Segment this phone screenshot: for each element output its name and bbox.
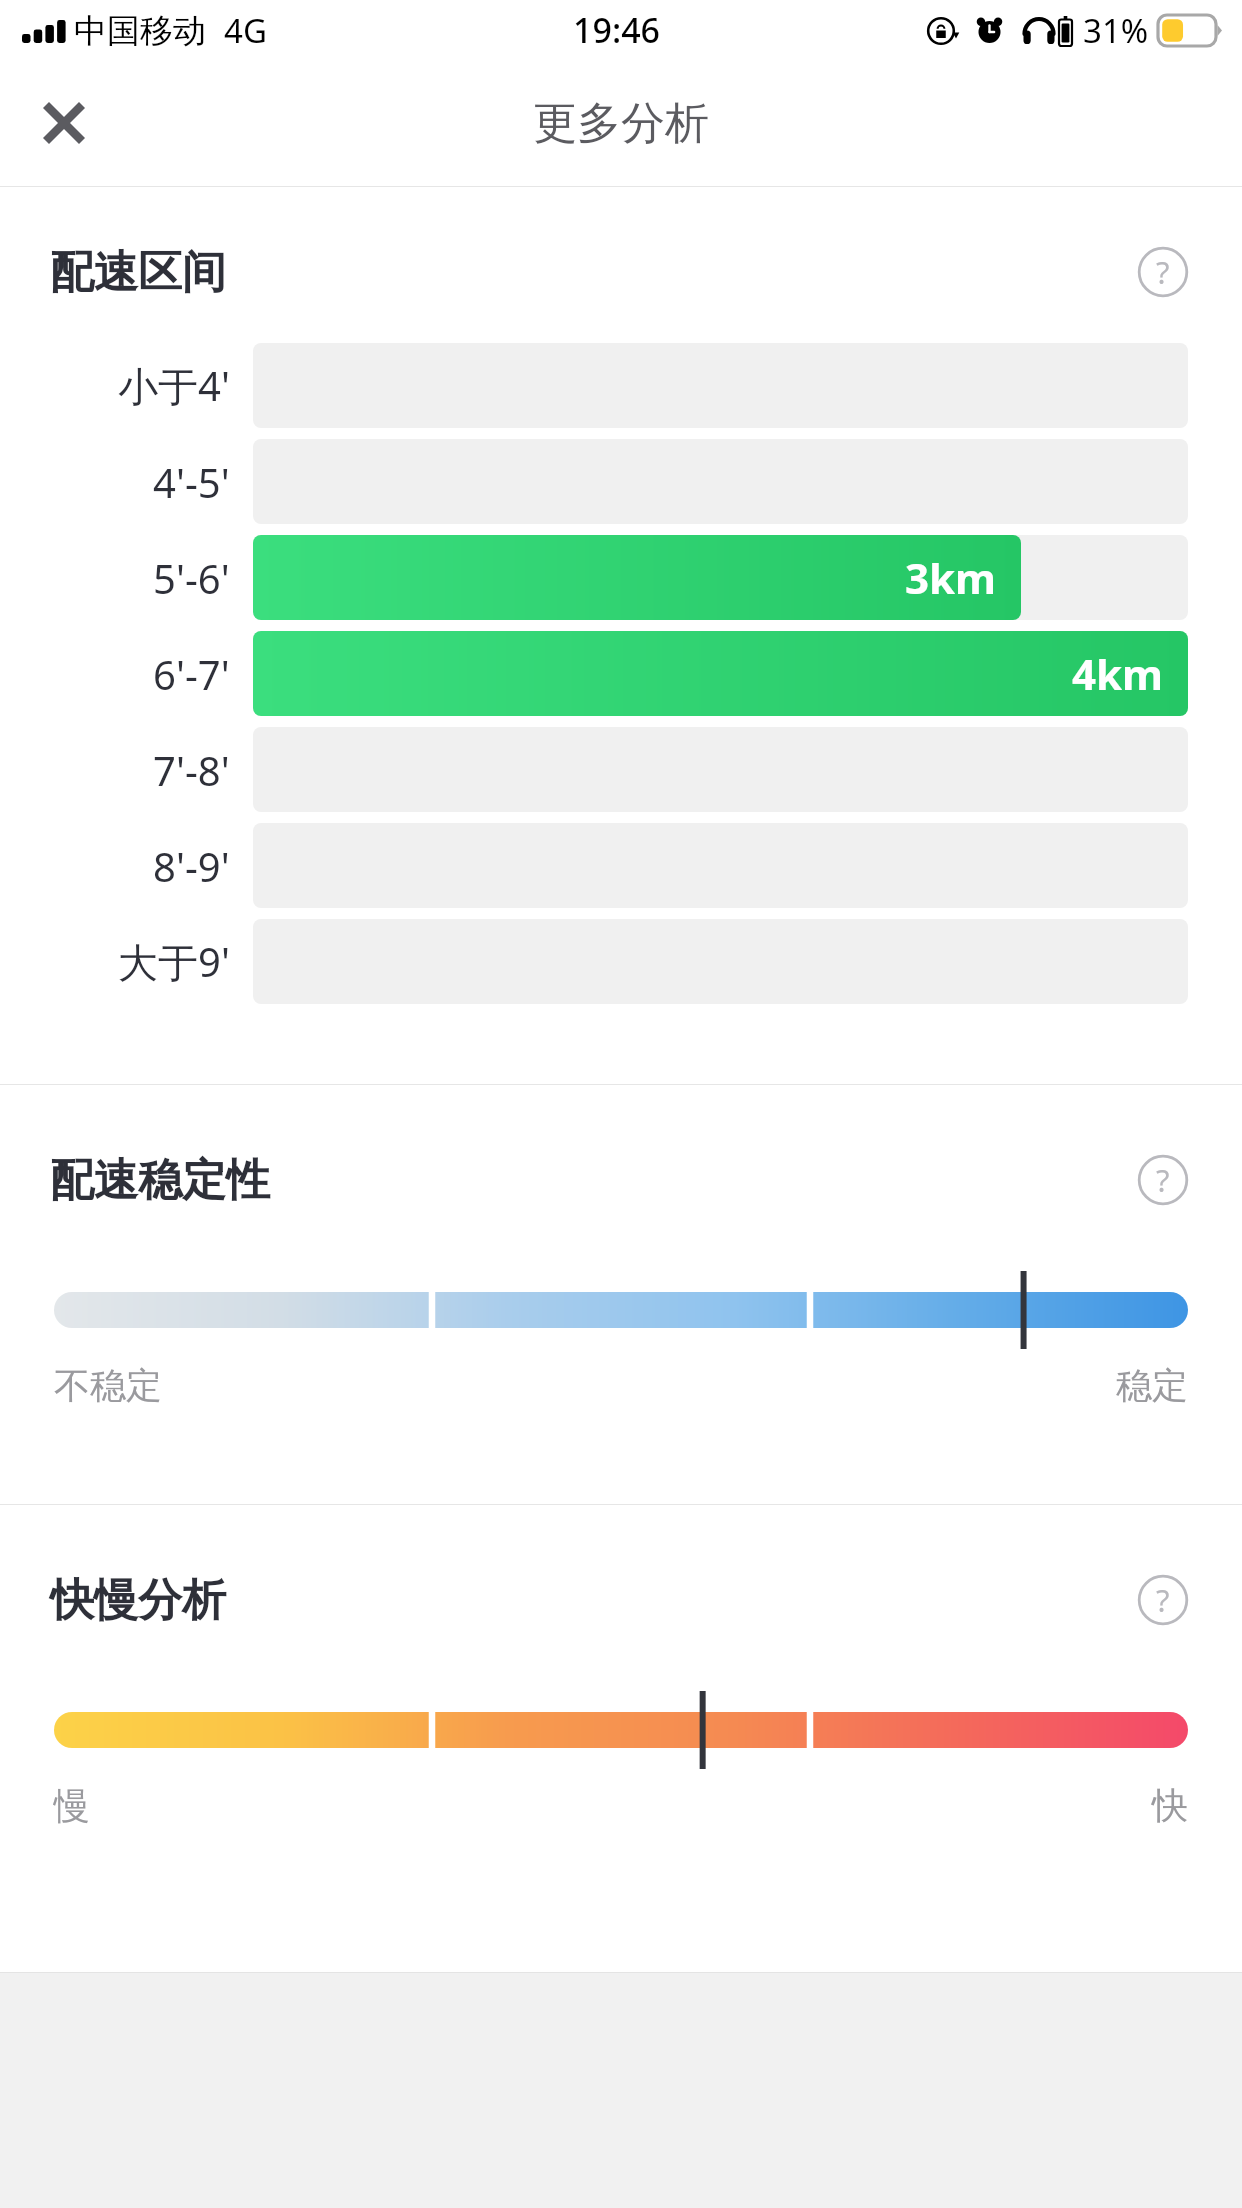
staticText: 快	[1152, 1783, 1188, 1828]
staticText: 小于4'	[118, 358, 230, 413]
staticText: 8'-9'	[153, 839, 230, 893]
staticText: 5'-6'	[153, 551, 230, 605]
staticText: ?	[1156, 1159, 1170, 1201]
staticText: 19:46	[573, 7, 661, 53]
staticText: ?	[1156, 251, 1170, 293]
staticText: 配速区间	[50, 245, 226, 300]
button[interactable]: 帮助	[1130, 1147, 1196, 1213]
staticText: 4G	[224, 8, 267, 53]
staticText: 3km	[905, 549, 997, 606]
staticText: 稳定	[1116, 1363, 1188, 1408]
staticText: 不稳定	[54, 1363, 162, 1408]
staticText: 6'-7'	[153, 647, 230, 701]
staticText: 7'-8'	[153, 743, 230, 797]
staticText: 更多分析	[533, 96, 709, 151]
staticText: 4km	[1072, 645, 1164, 702]
button[interactable]: 帮助	[1130, 1567, 1196, 1633]
staticText: 4'-5'	[153, 455, 230, 509]
staticText: ?	[1156, 1579, 1170, 1621]
staticText: 慢	[54, 1783, 90, 1828]
button[interactable]: 关闭	[22, 81, 106, 165]
staticText: 31%	[1083, 8, 1149, 53]
button[interactable]: 帮助	[1130, 239, 1196, 305]
staticText: 中国移动	[74, 10, 206, 52]
staticText: 快慢分析	[50, 1573, 226, 1628]
staticText: 配速稳定性	[50, 1153, 270, 1208]
staticText: 大于9'	[118, 934, 230, 989]
button[interactable]: 4km	[253, 631, 1188, 716]
button[interactable]: 3km	[253, 535, 1021, 620]
